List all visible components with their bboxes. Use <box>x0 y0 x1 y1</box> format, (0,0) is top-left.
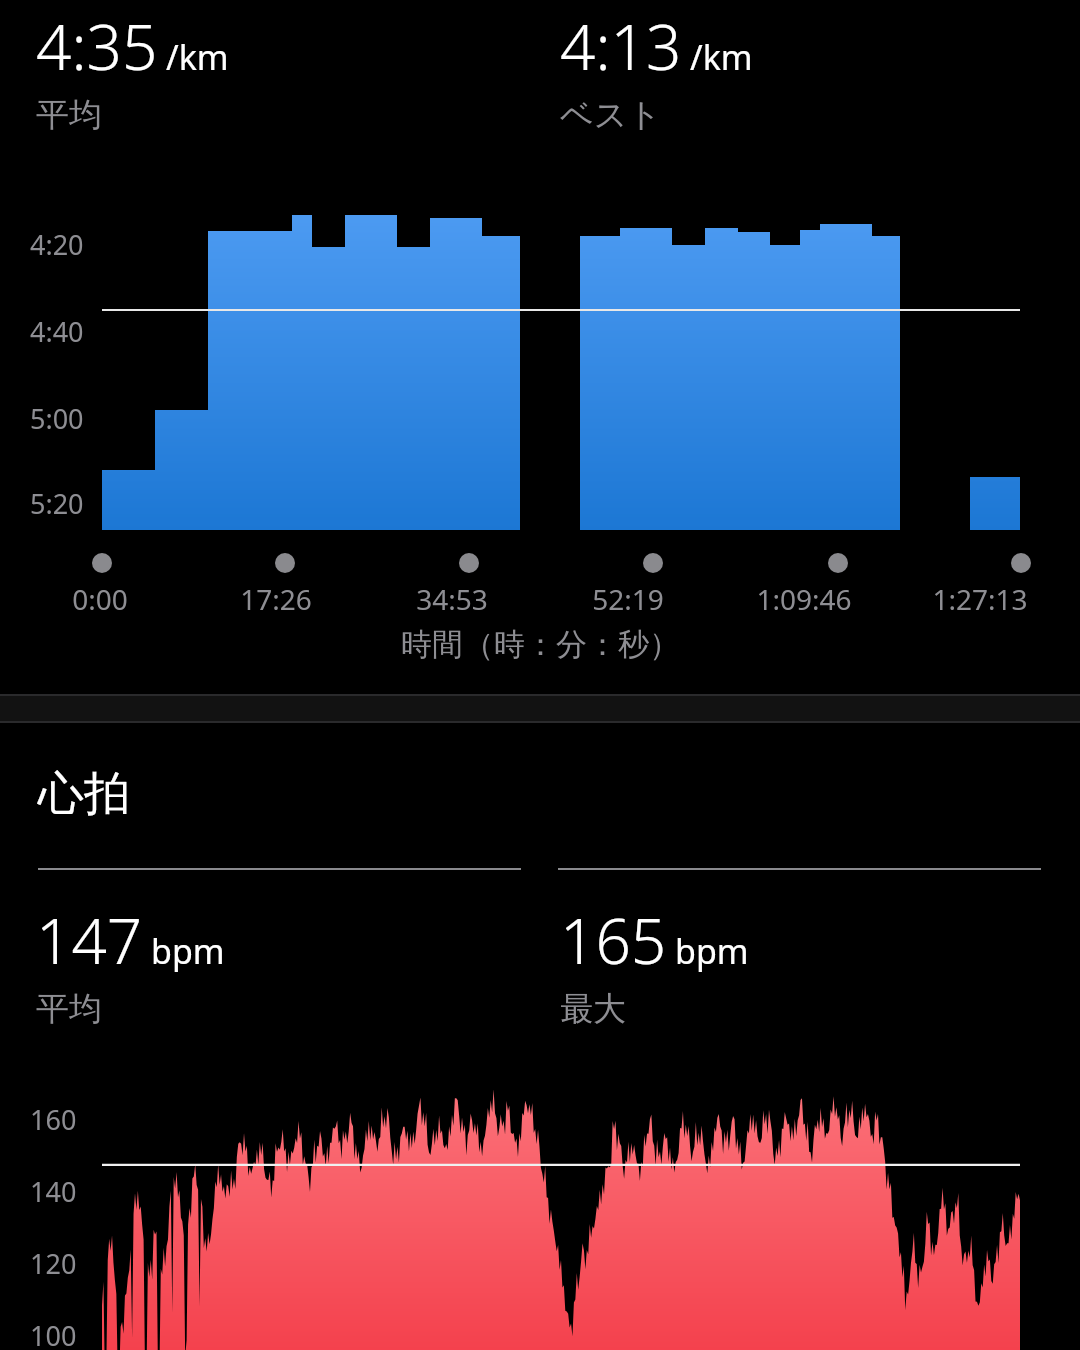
staticText: /km <box>690 34 753 80</box>
button[interactable]: 4:13 <box>540 4 1080 136</box>
staticText: ベスト <box>560 94 662 136</box>
staticText: 1:27:13 <box>932 580 1028 618</box>
staticText: 最大 <box>560 988 626 1030</box>
staticText: 4:35 <box>36 4 158 88</box>
staticText: 120 <box>30 1245 77 1282</box>
staticText: 平均 <box>36 988 102 1030</box>
staticText: /km <box>166 34 229 80</box>
staticText: 147 <box>36 898 143 982</box>
staticText: 100 <box>30 1317 77 1350</box>
staticText: 52:19 <box>592 580 664 618</box>
button[interactable]: 165 <box>540 898 1080 1030</box>
staticText: 4:20 <box>30 226 84 263</box>
staticText: 4:40 <box>30 313 84 350</box>
staticText: 時間（時：分：秒） <box>401 625 680 664</box>
staticText: 5:20 <box>30 485 84 522</box>
staticText: 165 <box>560 898 667 982</box>
staticText: 平均 <box>36 94 102 136</box>
staticText: 4:13 <box>560 4 682 88</box>
staticText: 160 <box>30 1101 77 1138</box>
staticText: bpm <box>151 928 225 974</box>
staticText: 140 <box>30 1173 77 1210</box>
button[interactable]: 心拍のグラフ <box>0 1080 1080 1350</box>
staticText: 1:09:46 <box>756 580 852 618</box>
button[interactable]: 147 <box>0 898 540 1030</box>
staticText: 17:26 <box>240 580 312 618</box>
staticText: bpm <box>675 928 749 974</box>
staticText: 心拍 <box>38 765 130 823</box>
staticText: 5:00 <box>30 400 84 437</box>
button[interactable]: ペースのグラフ <box>0 180 1080 580</box>
staticText: 0:00 <box>72 580 128 618</box>
button[interactable]: 4:35 <box>0 4 540 136</box>
staticText: 34:53 <box>416 580 488 618</box>
